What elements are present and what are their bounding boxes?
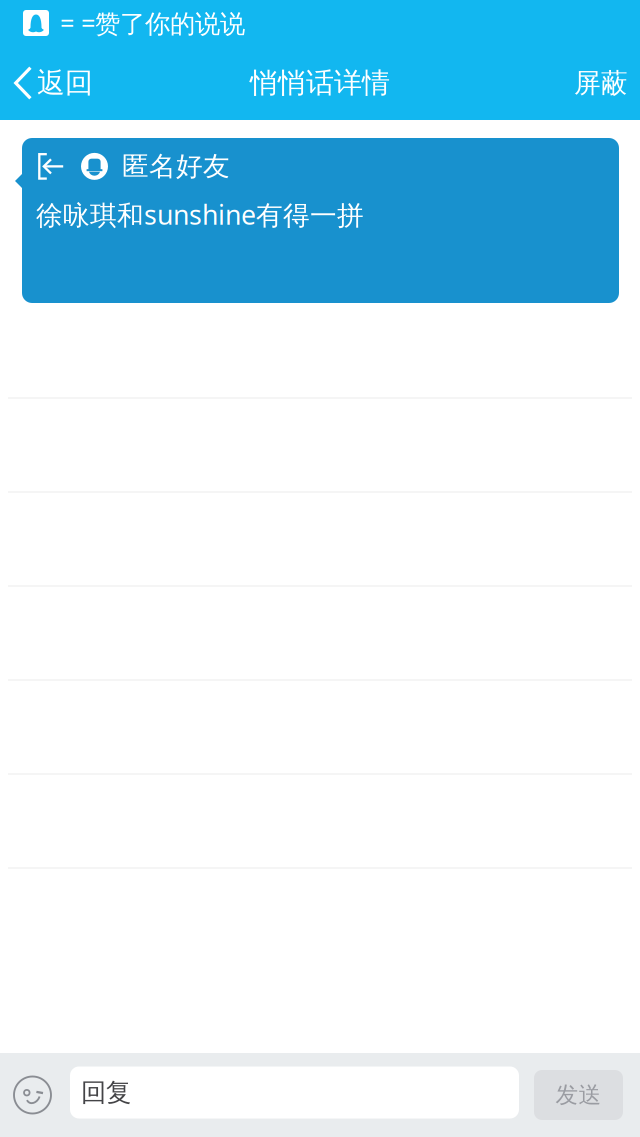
button[interactable]: 返回 <box>0 46 105 120</box>
staticText: 返回 <box>37 66 93 100</box>
staticText: 徐咏琪和sunshine有得一拼 <box>36 197 364 232</box>
button[interactable]: = =赞了你的说说 <box>0 0 640 46</box>
button[interactable]: Emoji <box>0 1053 70 1137</box>
staticText: 发送 <box>555 1081 601 1109</box>
button[interactable]: 回复 <box>70 1066 519 1123</box>
button[interactable]: 发送 <box>534 1070 623 1120</box>
staticText: 回复 <box>81 1077 131 1108</box>
staticText: 屏蔽 <box>574 67 628 99</box>
staticText: 匿名好友 <box>122 150 230 183</box>
staticText: 悄悄话详情 <box>250 66 390 100</box>
button[interactable]: 屏蔽 <box>560 46 640 120</box>
staticText: = =赞了你的说说 <box>60 6 245 40</box>
